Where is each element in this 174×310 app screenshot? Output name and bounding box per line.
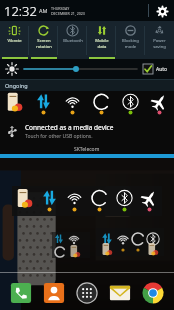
staticText: THURSDAY (51, 6, 70, 11)
button[interactable]: Bluetooth (58, 21, 87, 59)
button[interactable]: Apps (75, 281, 99, 305)
button[interactable]: Brightness (24, 63, 137, 75)
button[interactable]: Phone (9, 281, 33, 305)
button[interactable]: Blocking mode (116, 21, 145, 59)
staticText: AM (39, 7, 48, 14)
staticText: Connected as a media device (25, 123, 114, 132)
staticText: 12:32 (4, 2, 37, 20)
button[interactable]: Power saving (145, 21, 174, 59)
staticText: Mobile data (95, 38, 109, 49)
staticText: Touch for other USB options. (25, 133, 93, 140)
button[interactable]: Contacts (42, 281, 66, 305)
button[interactable]: Settings (154, 3, 170, 19)
button[interactable]: Chrome (141, 281, 165, 305)
staticText: Power saving (153, 38, 166, 49)
button[interactable]: Mobile data (87, 21, 116, 59)
button[interactable]: Auto (143, 64, 168, 74)
button[interactable]: Vibrate (0, 21, 29, 59)
staticText: Blocking mode (122, 38, 139, 49)
staticText: DECEMBER 21, 2023 (51, 11, 85, 16)
staticText: Ongoing (5, 82, 28, 89)
button[interactable]: Email (108, 281, 132, 305)
button[interactable]: Screen rotation (29, 21, 58, 59)
staticText: Auto (156, 66, 168, 73)
staticText: Bluetooth (63, 38, 83, 44)
staticText: Screen rotation (36, 38, 52, 49)
staticText: SKTelecom (74, 146, 100, 153)
staticText: Vibrate (7, 38, 22, 44)
button[interactable]: Connected as a media device (0, 118, 174, 144)
